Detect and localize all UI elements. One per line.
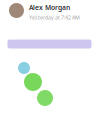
staticText: Alex Morgan [29,3,70,12]
staticText: Yesterday at 7:42 AM [29,14,80,21]
